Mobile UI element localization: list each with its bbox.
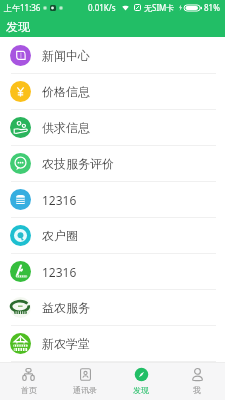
button[interactable]: 通讯录 <box>57 363 113 400</box>
staticText: 0.01K/s <box>88 2 116 13</box>
staticText: 农户圈 <box>42 228 78 243</box>
staticText: 上午11:36 <box>4 2 41 13</box>
staticText: 益农服务 <box>42 300 90 315</box>
staticText: 供求信息 <box>42 120 90 135</box>
staticText: 12316 <box>42 264 77 280</box>
staticText: 首页 <box>21 385 37 395</box>
button[interactable]: 12316 <box>0 182 225 218</box>
button[interactable]: 益农服务 <box>0 290 225 326</box>
button[interactable]: 价格信息 <box>0 74 225 110</box>
button[interactable]: 农技服务评价 <box>0 146 225 182</box>
button[interactable]: 新农学堂 <box>0 326 225 362</box>
staticText: 通讯录 <box>73 385 97 395</box>
staticText: 农技服务评价 <box>42 156 114 171</box>
button[interactable]: 农户圈 <box>0 218 225 254</box>
staticText: 81% <box>204 2 220 13</box>
staticText: 无SIM卡 <box>144 2 175 13</box>
staticText: 发现 <box>133 385 149 395</box>
staticText: 12316 <box>42 192 77 208</box>
staticText: 价格信息 <box>42 84 90 99</box>
button[interactable]: 12316 <box>0 254 225 290</box>
button[interactable]: 首页 <box>0 363 57 400</box>
button[interactable]: 我 <box>169 363 225 400</box>
button[interactable]: 发现 <box>113 363 169 400</box>
button[interactable]: 新闻中心 <box>0 38 225 74</box>
staticText: 发现 <box>6 19 30 34</box>
staticText: 新闻中心 <box>42 48 90 63</box>
button[interactable]: 供求信息 <box>0 110 225 146</box>
staticText: 新农学堂 <box>42 336 90 351</box>
staticText: 我 <box>193 385 201 395</box>
